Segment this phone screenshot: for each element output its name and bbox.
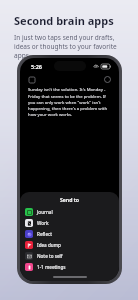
staticText: Second brain apps bbox=[14, 13, 114, 28]
button[interactable]: Journal bbox=[20, 206, 119, 217]
staticText: 1-1 meetings bbox=[37, 264, 66, 270]
staticText: 5:26 bbox=[31, 63, 42, 70]
staticText: In just two taps send your drafts, ideas… bbox=[14, 33, 124, 60]
staticText: Reflect bbox=[37, 231, 53, 237]
staticText: Sunday isn't the solution. It's Monday -… bbox=[28, 87, 111, 117]
staticText: Work bbox=[37, 220, 49, 226]
button[interactable]: 1-1 meetings bbox=[20, 261, 119, 272]
staticText: Note to self bbox=[37, 253, 63, 259]
button[interactable]: More options bbox=[103, 75, 112, 84]
button[interactable]: Notes bbox=[27, 75, 36, 84]
button[interactable]: Work bbox=[20, 217, 119, 228]
button[interactable]: Idea dump bbox=[20, 239, 119, 250]
staticText: Send to bbox=[20, 196, 119, 203]
button[interactable]: Note to self bbox=[20, 250, 119, 261]
staticText: Idea dump bbox=[37, 242, 61, 248]
staticText: Journal bbox=[37, 209, 53, 215]
button[interactable]: Reflect bbox=[20, 228, 119, 239]
